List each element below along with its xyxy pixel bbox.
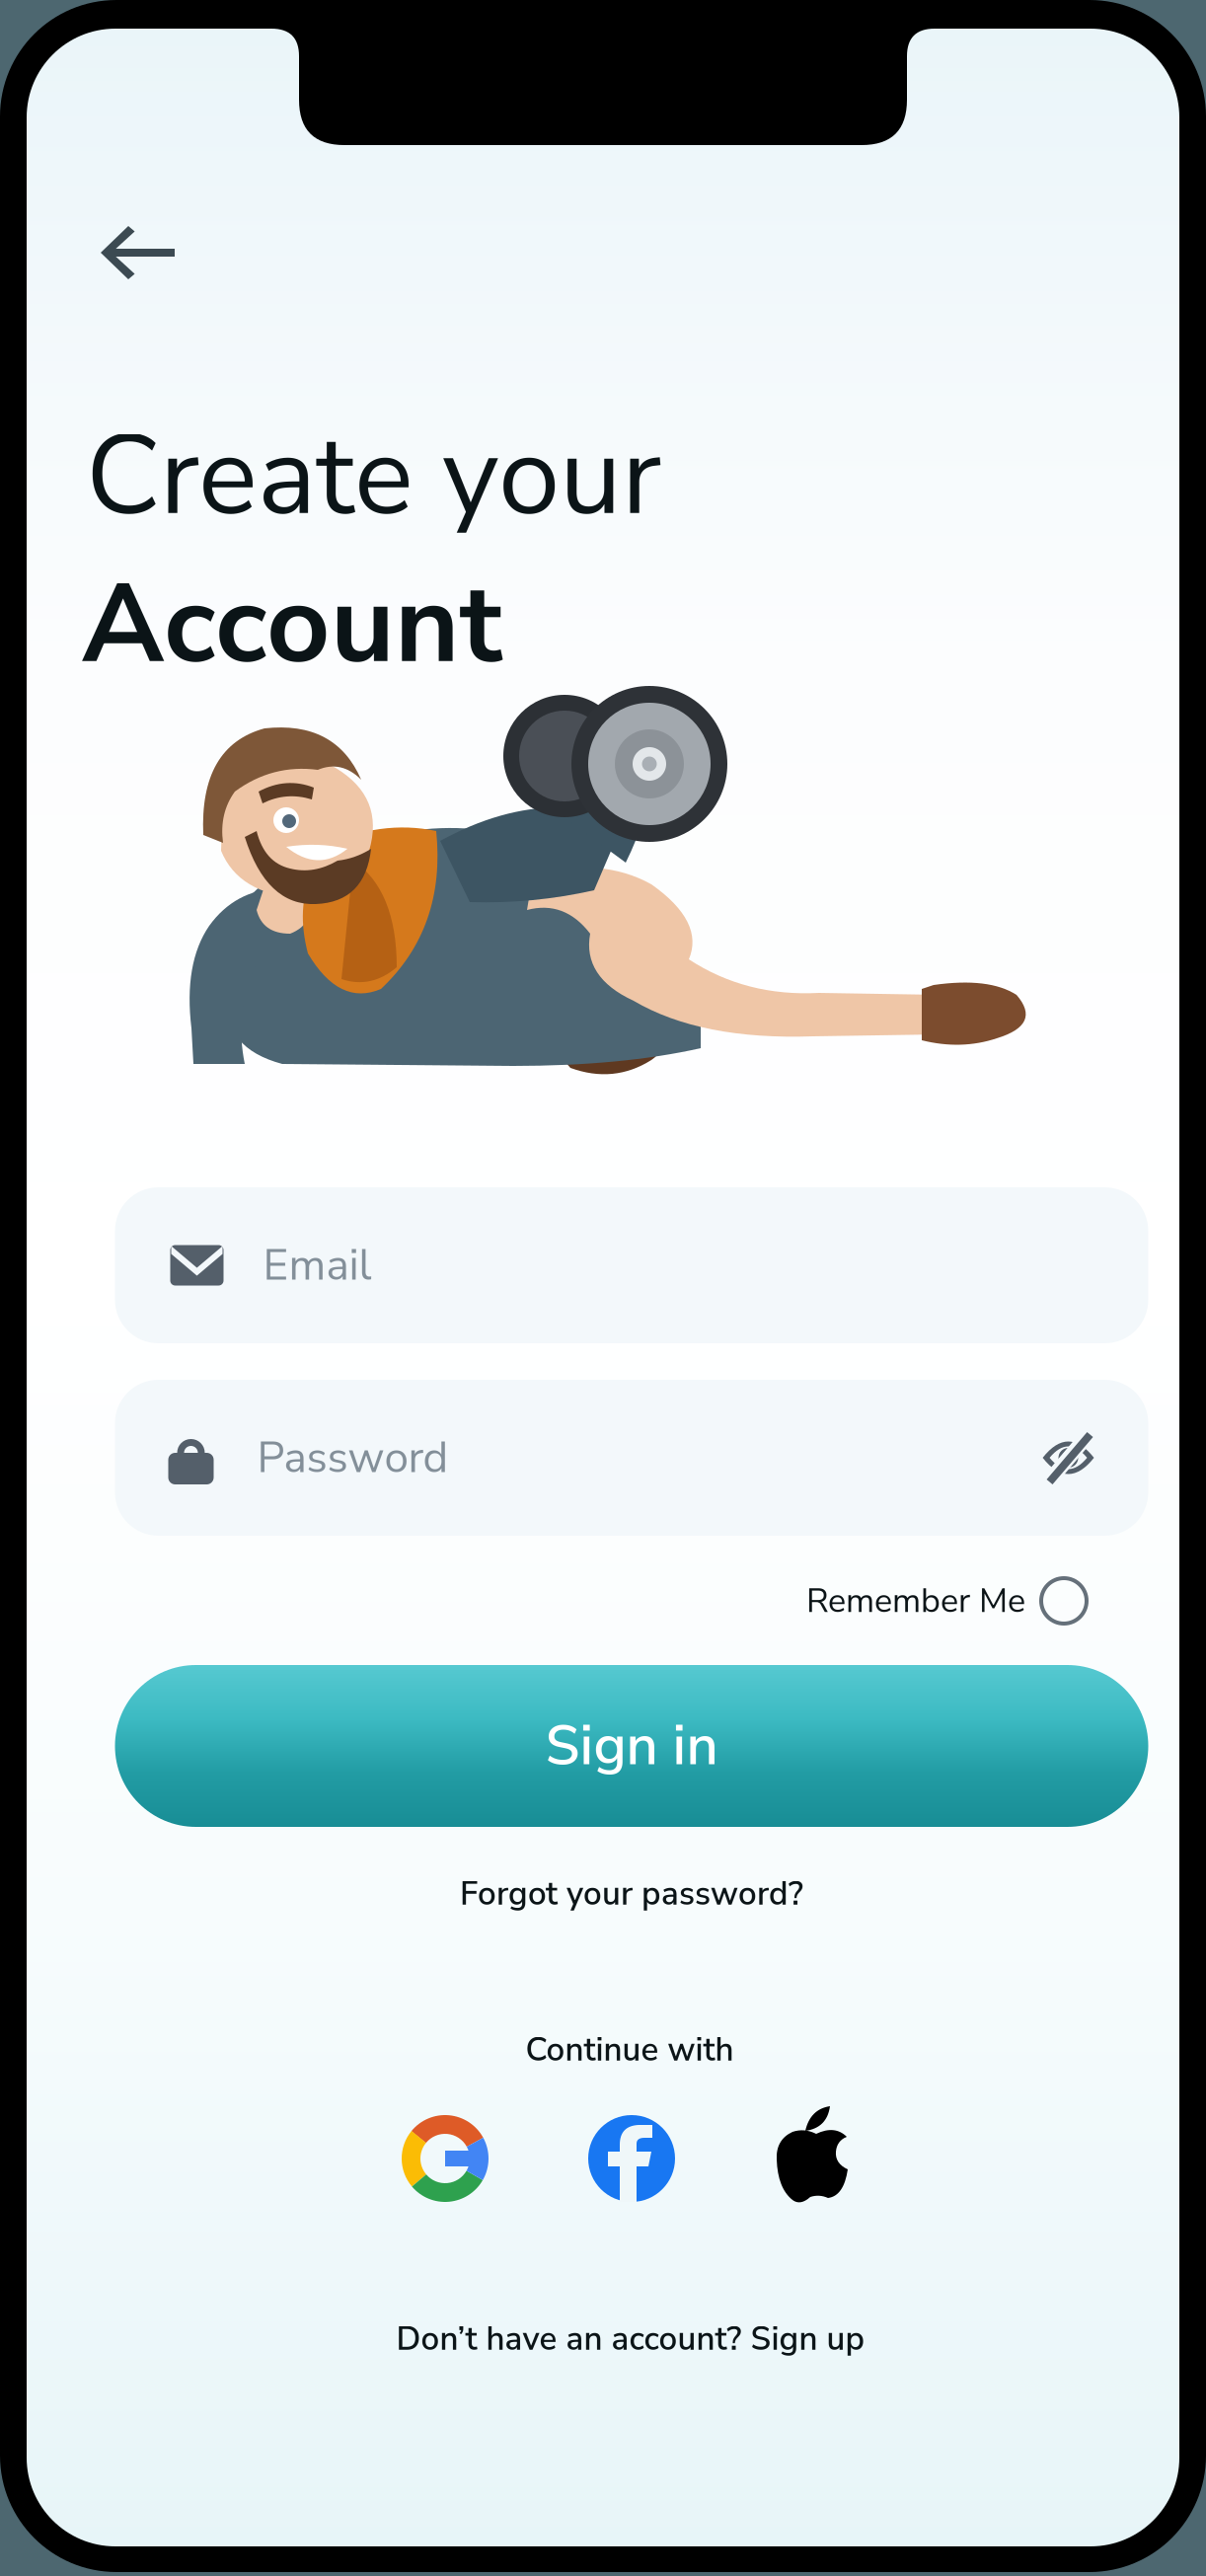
button[interactable]: Back — [64, 189, 212, 317]
button[interactable]: Continue with Facebook — [588, 2115, 675, 2202]
button[interactable]: Remember Me — [806, 1566, 1087, 1635]
button[interactable]: Forgot your password? — [257, 1861, 1007, 1927]
staticText: Forgot your password? — [460, 1872, 803, 1916]
staticText: Remember Me — [806, 1578, 1025, 1624]
button[interactable]: Sign in — [115, 1665, 1148, 1827]
staticText: Don’t have an account? Sign up — [396, 2317, 865, 2361]
staticText: Account — [82, 549, 502, 700]
staticText: Email — [263, 1236, 372, 1295]
button[interactable]: Continue with Google — [402, 2115, 489, 2202]
staticText: Password — [257, 1428, 449, 1487]
button[interactable]: Don’t have an account? Sign up — [187, 2307, 1075, 2372]
staticText: Sign in — [545, 1708, 718, 1784]
staticText: Continue with — [526, 2028, 734, 2072]
staticText: Create your — [86, 401, 661, 552]
button[interactable]: Continue with Apple — [773, 2106, 860, 2207]
